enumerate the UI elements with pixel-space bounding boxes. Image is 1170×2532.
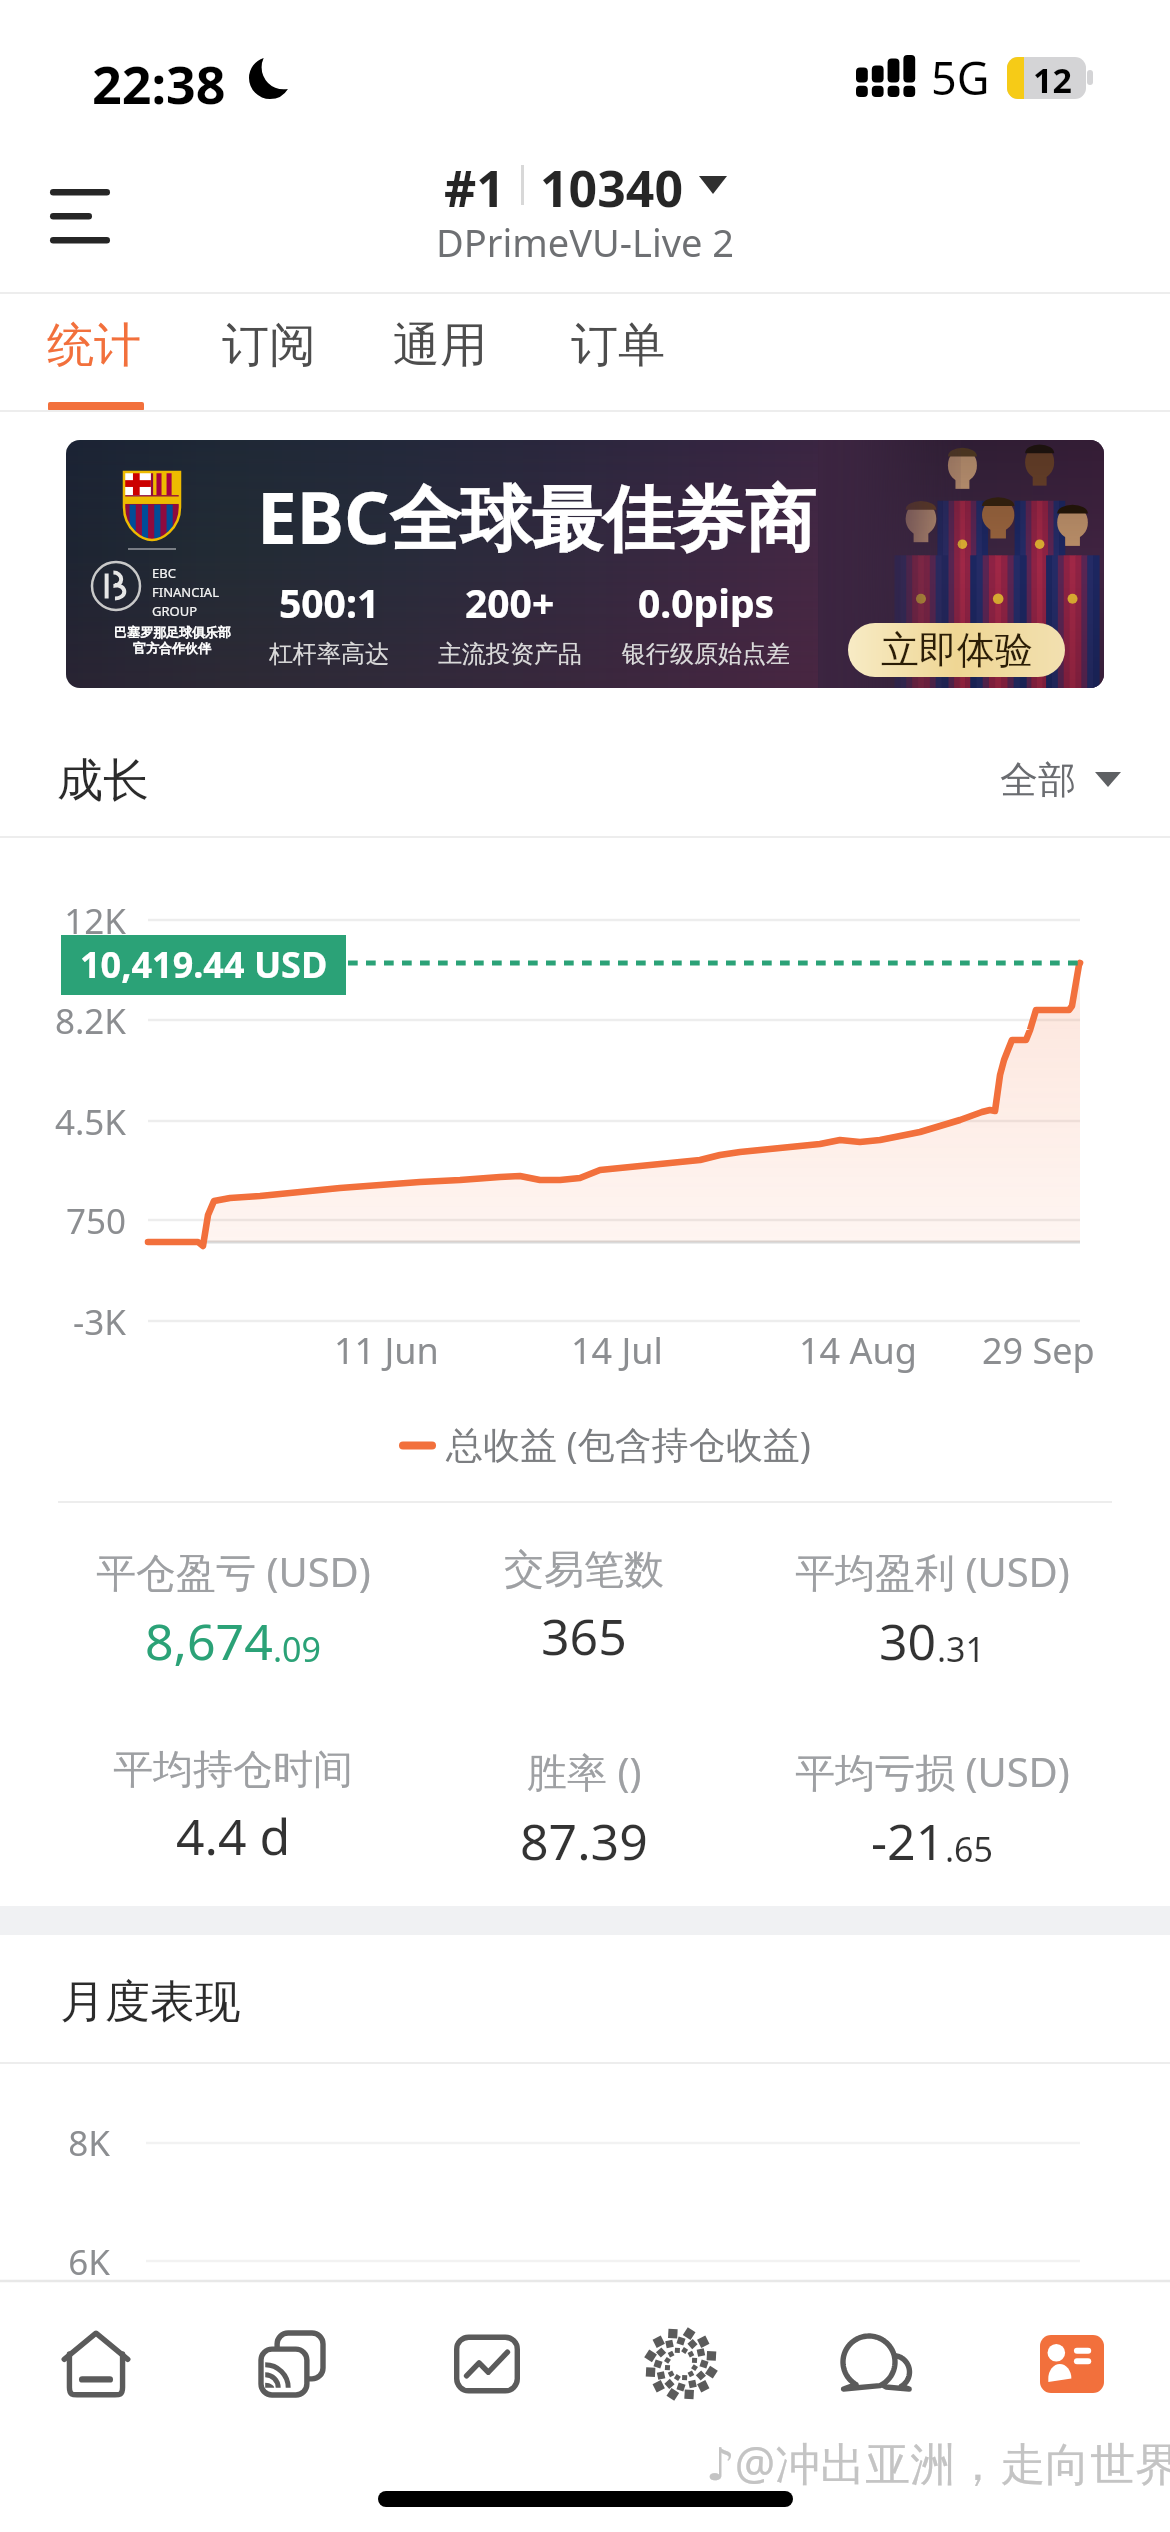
staticText: 365: [541, 1602, 627, 1670]
staticText: 平均盈利 (USD): [795, 1544, 1070, 1599]
staticText: 29 Sep: [982, 1326, 1095, 1375]
staticText: 总收益 (包含持仓收益): [446, 1418, 811, 1469]
button[interactable]: 订阅: [196, 291, 342, 399]
staticText: 立即体验: [881, 626, 1033, 674]
staticText: 交易笔数: [504, 1544, 664, 1594]
staticText: 巴塞罗那足球俱乐部: [114, 624, 231, 640]
staticText: 22:38: [92, 48, 226, 119]
button[interactable]: Home: [1, 2300, 191, 2428]
staticText: 10,419.44 USD: [80, 940, 328, 989]
button[interactable]: 通用: [367, 291, 513, 399]
button[interactable]: #1: [420, 154, 750, 216]
staticText: 0.0pips: [638, 576, 775, 629]
staticText: 30: [879, 1607, 937, 1675]
staticText: .65: [945, 1826, 994, 1872]
staticText: ♪@冲出亚洲，走向世界: [706, 2432, 1170, 2493]
staticText: 成长: [57, 752, 149, 810]
staticText: EBC全球最佳券商: [257, 468, 816, 565]
staticText: 8.2K: [0, 997, 126, 1045]
button[interactable]: 统计: [21, 291, 167, 399]
staticText: 5G: [931, 47, 990, 108]
button[interactable]: 立即体验: [848, 623, 1065, 677]
staticText: 12: [1033, 57, 1072, 99]
staticText: 11 Jun: [334, 1326, 439, 1375]
staticText: 8,674: [145, 1607, 273, 1675]
staticText: 主流投资产品: [438, 639, 582, 669]
staticText: 14 Jul: [571, 1326, 663, 1375]
staticText: EBC: [152, 564, 176, 582]
staticText: 全部: [1000, 756, 1076, 804]
staticText: 4.5K: [0, 1098, 126, 1146]
staticText: .31: [937, 1626, 986, 1672]
staticText: 月度表现: [60, 1974, 240, 2031]
button[interactable]: Discover: [586, 2300, 776, 2428]
staticText: 官方合作伙伴: [133, 640, 211, 656]
button[interactable]: Chat: [781, 2300, 971, 2428]
staticText: 统计: [47, 316, 141, 375]
staticText: 8K: [0, 2119, 110, 2167]
button[interactable]: EBC: [66, 440, 1104, 688]
staticText: -21: [871, 1807, 945, 1875]
staticText: DPrimeVU-Live 2: [436, 216, 735, 268]
staticText: 通用: [393, 316, 487, 375]
staticText: GROUP: [152, 602, 198, 620]
staticText: .09: [273, 1626, 322, 1672]
staticText: 4.4 d: [176, 1802, 291, 1870]
staticText: 200+: [465, 576, 555, 629]
staticText: FINANCIAL: [152, 583, 219, 601]
button[interactable]: Feed: [197, 2300, 387, 2428]
staticText: 平均亏损 (USD): [795, 1744, 1070, 1799]
staticText: 平仓盈亏 (USD): [96, 1544, 371, 1599]
button[interactable]: Menu: [20, 158, 140, 274]
staticText: 订单: [571, 316, 665, 375]
staticText: 14 Aug: [799, 1326, 917, 1375]
button[interactable]: 订单: [545, 291, 691, 399]
button[interactable]: 全部: [986, 737, 1126, 807]
button[interactable]: Charts: [392, 2300, 582, 2428]
staticText: 杠杆率高达: [269, 639, 389, 669]
staticText: -3K: [0, 1298, 126, 1346]
staticText: 胜率 (): [527, 1744, 642, 1799]
staticText: 平均持仓时间: [113, 1744, 353, 1794]
staticText: 500:1: [279, 576, 380, 629]
staticText: 6K: [0, 2238, 110, 2286]
staticText: 10340: [540, 154, 683, 216]
button[interactable]: Profile: [977, 2300, 1167, 2428]
staticText: 750: [0, 1197, 126, 1245]
staticText: 87.39: [520, 1807, 648, 1875]
staticText: 银行级原始点差: [622, 639, 790, 669]
staticText: 12K: [0, 897, 126, 945]
staticText: #1: [444, 154, 505, 216]
staticText: 订阅: [222, 316, 316, 375]
